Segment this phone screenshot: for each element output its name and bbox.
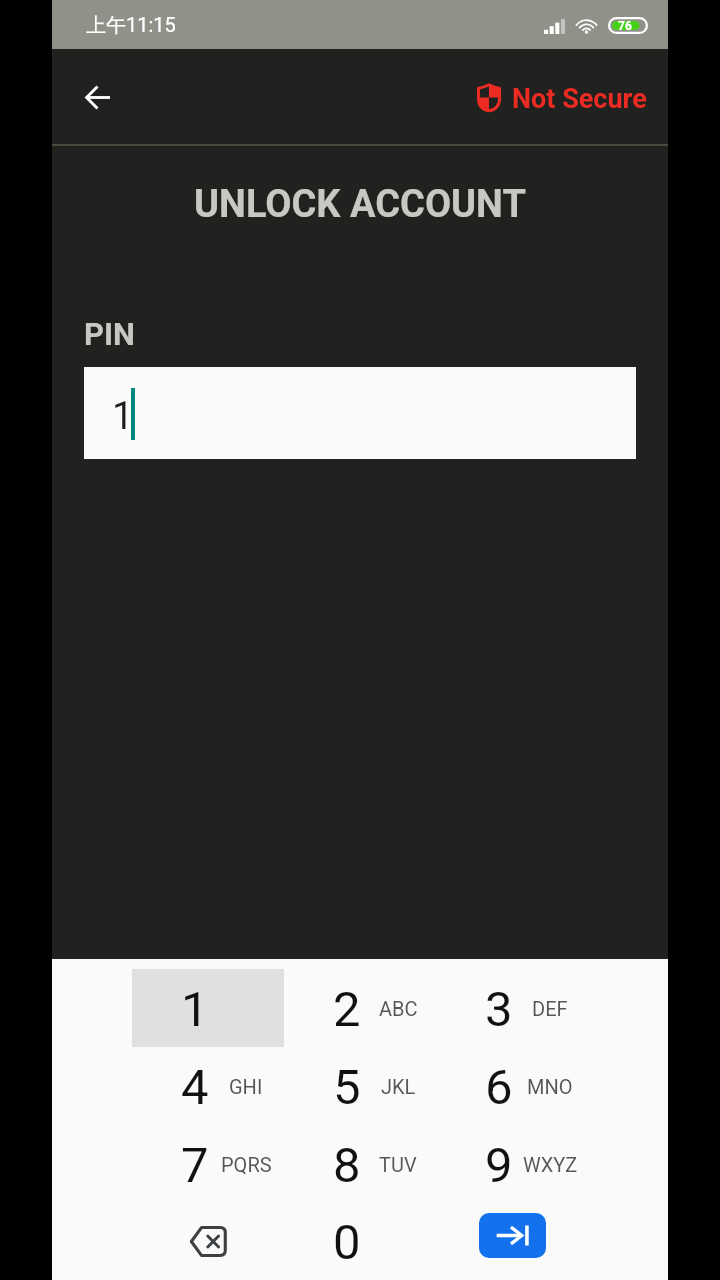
button[interactable]: Backspace xyxy=(132,1203,284,1280)
staticText: 1 xyxy=(112,394,134,439)
staticText: 4 xyxy=(181,1059,209,1116)
button[interactable]: 2 xyxy=(284,969,436,1047)
staticText: PIN xyxy=(84,316,135,352)
staticText: PQRS xyxy=(221,1153,272,1176)
staticText: 2 xyxy=(333,981,361,1038)
staticText: 1 xyxy=(181,981,209,1038)
staticText: UNLOCK ACCOUNT xyxy=(52,182,668,227)
button[interactable]: Back xyxy=(64,64,130,130)
staticText: 9 xyxy=(485,1137,513,1194)
button[interactable]: 7 xyxy=(132,1125,284,1203)
staticText: 3 xyxy=(485,981,513,1038)
button[interactable]: 3 xyxy=(436,969,588,1047)
button[interactable]: 5 xyxy=(284,1047,436,1125)
staticText: MNO xyxy=(527,1075,573,1098)
staticText: 8 xyxy=(333,1137,361,1194)
staticText: TUV xyxy=(379,1153,417,1176)
staticText: 上午11:15 xyxy=(86,13,176,38)
button[interactable]: 9 xyxy=(436,1125,588,1203)
staticText: GHI xyxy=(229,1075,263,1098)
staticText: 6 xyxy=(485,1059,513,1116)
button[interactable]: 6 xyxy=(436,1047,588,1125)
button[interactable]: 4 xyxy=(132,1047,284,1125)
staticText: 7 xyxy=(181,1137,209,1194)
button[interactable]: Not Secure xyxy=(477,83,647,115)
button[interactable]: 8 xyxy=(284,1125,436,1203)
staticText: JKL xyxy=(381,1075,416,1098)
button[interactable]: 1 xyxy=(84,367,636,459)
staticText: 0 xyxy=(333,1214,361,1271)
staticText: ABC xyxy=(379,997,418,1020)
staticText: WXYZ xyxy=(523,1153,578,1176)
staticText: 5 xyxy=(333,1059,361,1116)
button[interactable]: 1 xyxy=(132,969,284,1047)
staticText: Not Secure xyxy=(512,83,647,115)
button[interactable]: 0 xyxy=(284,1203,436,1280)
staticText: 76 xyxy=(618,19,632,33)
staticText: DEF xyxy=(532,997,568,1020)
button[interactable]: Enter xyxy=(436,1203,588,1280)
